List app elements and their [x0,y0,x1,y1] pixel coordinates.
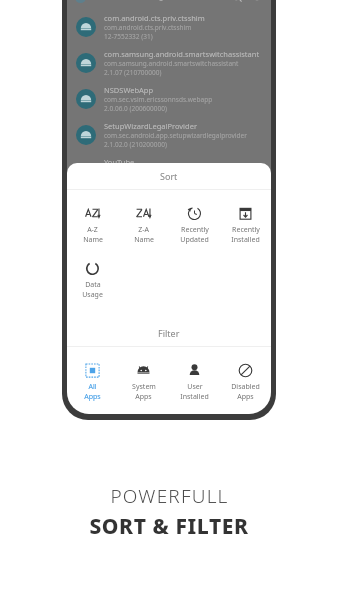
button[interactable]: Z-A [118,204,169,247]
staticText: com.samsung.android.app.galaxyfinder [104,204,226,213]
staticText: Installed [180,392,209,402]
button[interactable]: Recently [220,204,271,247]
other: Search [231,0,243,3]
staticText: A-Z [87,225,98,235]
button[interactable]: Finder [67,189,271,217]
staticText: com.sec.android.app.setupwizardlegalprov… [104,131,247,140]
staticText: com.google.android.youtube [104,167,193,176]
staticText: 2.0.06.0 (200600000) [104,104,167,113]
button[interactable]: NSDSWebApp [67,81,271,117]
button[interactable]: Recently [169,204,220,247]
button[interactable]: System [118,361,169,404]
staticText: Recently [232,225,260,235]
staticText: Z-A [138,225,149,235]
button[interactable]: Disabled [220,361,271,404]
button[interactable]: A-Z [67,204,118,247]
staticText: POWERFULL [110,483,229,509]
button[interactable]: com.android.cts.priv.ctsshim [67,9,271,45]
button[interactable]: SetupWizardLegalProvider [67,117,271,153]
staticText: Filter [158,327,180,339]
staticText: All [88,382,97,392]
staticText: SORT & FILTER [89,512,249,541]
staticText: Apps [84,392,101,402]
staticText: Recently [181,225,209,235]
staticText: 2.1.02.0 (210200000) [104,140,167,149]
staticText: 2.1.07 (210700000) [104,68,162,77]
staticText: Sort [160,170,178,182]
staticText: com.android.cts.priv.ctsshim [104,13,205,23]
staticText: Usage [82,290,103,300]
staticText: User [187,382,203,392]
staticText: System [132,382,156,392]
staticText: SetupWizardLegalProvider [104,121,197,131]
button[interactable]: All [67,361,118,404]
staticText: Apps [237,392,254,402]
button[interactable]: Data [67,259,118,302]
staticText: com.android.cts.priv.ctsshim [104,23,192,32]
staticText: YouTube [104,157,135,167]
staticText: Installed [231,235,260,245]
staticText: Disabled [231,382,260,392]
button[interactable]: com.samsung.android.smartswitchassistant [67,45,271,81]
staticText: NSDSWebApp [104,85,154,95]
staticText: com.sec.vsim.ericssonnsds.webapp [104,95,213,104]
staticText: 17.12.34 (1528419776) [104,176,173,185]
staticText: Updated [180,235,209,245]
button[interactable]: YouTube [67,153,271,189]
staticText: Data [85,280,101,290]
button[interactable]: User [169,361,220,404]
staticText: Name [83,235,103,245]
staticText: Name [134,235,154,245]
staticText: com.samsung.android.smartswitchassistant [104,49,260,59]
staticText: com.samsung.android.smartswitchassistant [104,59,239,68]
staticText: Apps [135,392,152,402]
staticText: Total Installed Packages: 568 [92,0,187,2]
staticText: 12-7552332 (31) [104,32,153,41]
other: Filter [251,0,263,3]
